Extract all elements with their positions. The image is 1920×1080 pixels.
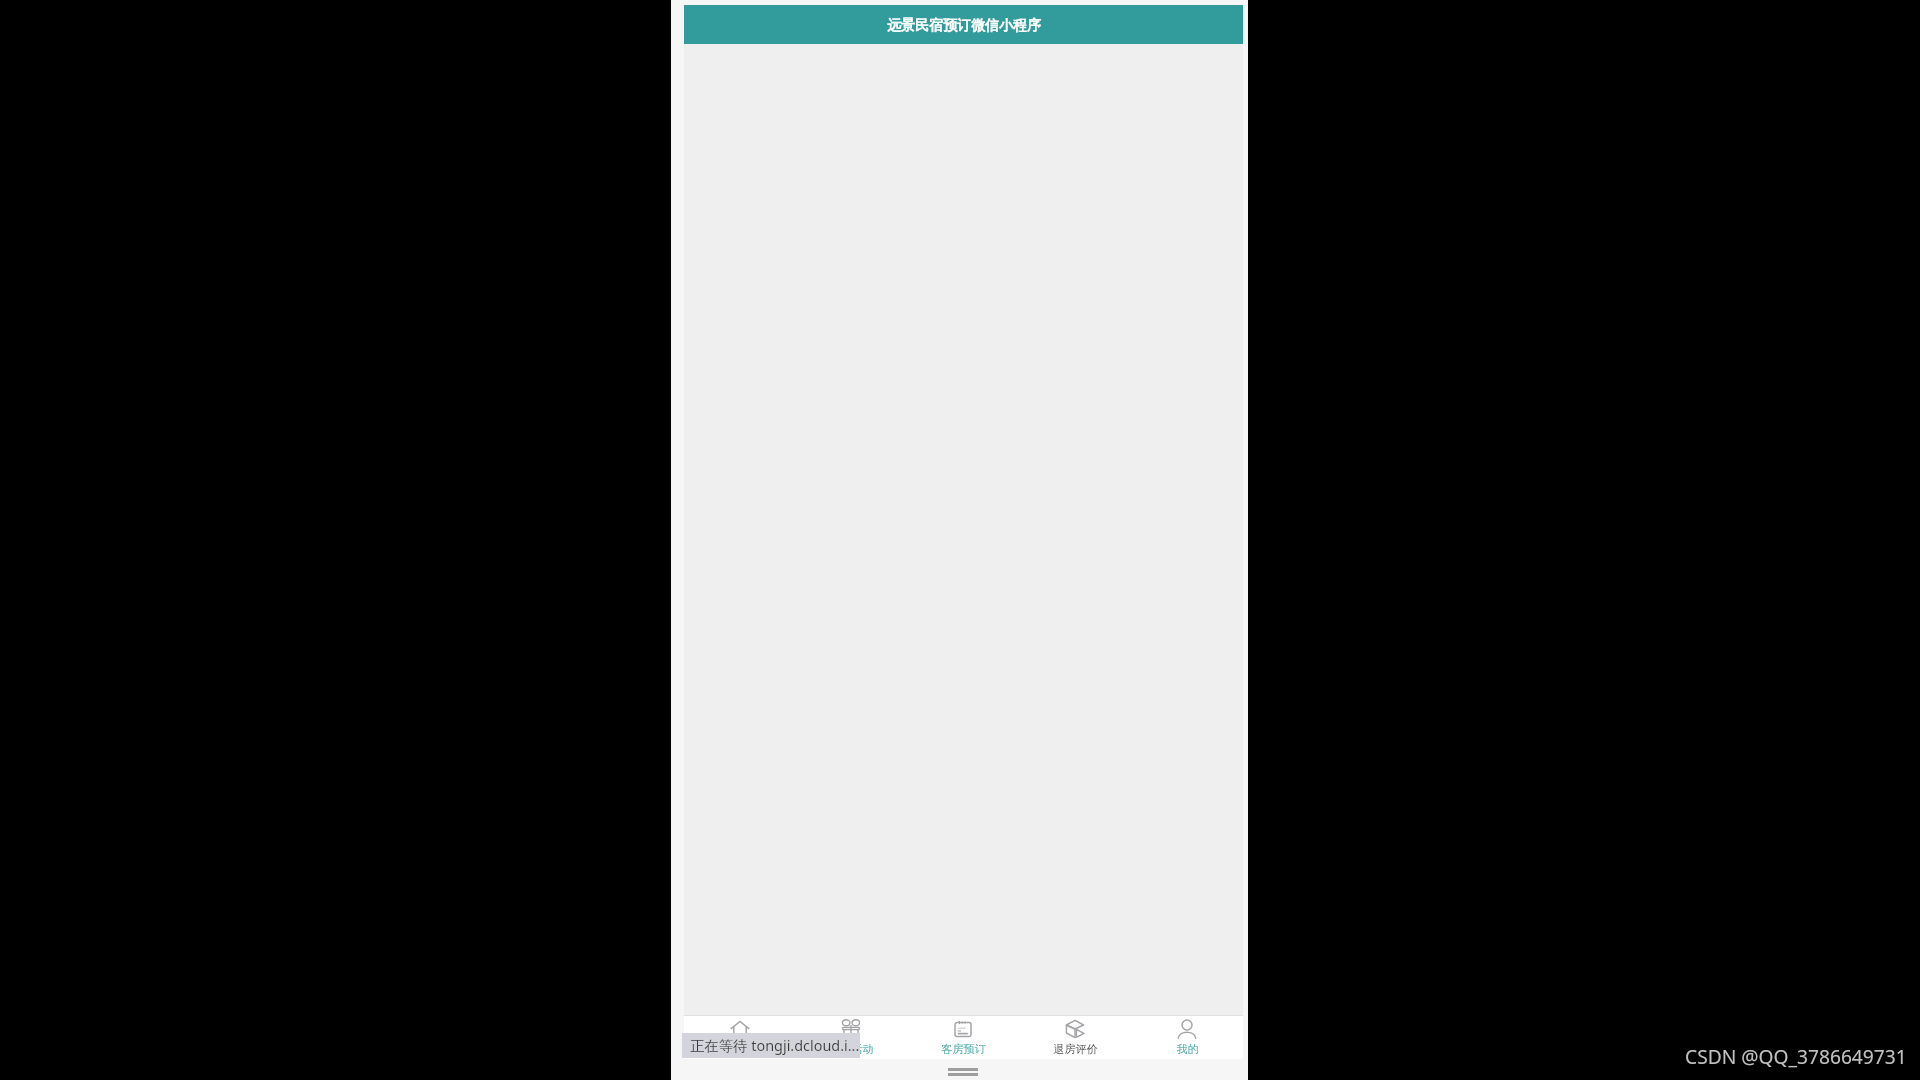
- other: Room booking: [953, 1019, 973, 1039]
- other: Checkout review: [1065, 1019, 1085, 1039]
- button[interactable]: Checkout review: [1019, 1015, 1131, 1059]
- staticText: 首页: [728, 1042, 751, 1056]
- button[interactable]: Home: [684, 1015, 795, 1059]
- staticText: 正在等待 tongji.dcloud.i...: [690, 1036, 860, 1056]
- other: Home: [730, 1019, 750, 1039]
- button[interactable]: Room booking: [907, 1015, 1019, 1059]
- staticText: 客房预订: [941, 1042, 986, 1056]
- staticText: 我的: [1176, 1042, 1199, 1056]
- other: Promotions: [841, 1019, 861, 1039]
- staticText: 远景民宿预订微信小程序: [887, 17, 1041, 35]
- staticText: 退房评价: [1053, 1042, 1098, 1056]
- staticText: CSDN @QQ_3786649731: [1685, 1043, 1907, 1069]
- staticText: 优惠活动: [829, 1042, 874, 1056]
- button[interactable]: Profile: [1131, 1015, 1243, 1059]
- button[interactable]: Promotions: [795, 1015, 907, 1059]
- other: Profile: [1177, 1019, 1197, 1039]
